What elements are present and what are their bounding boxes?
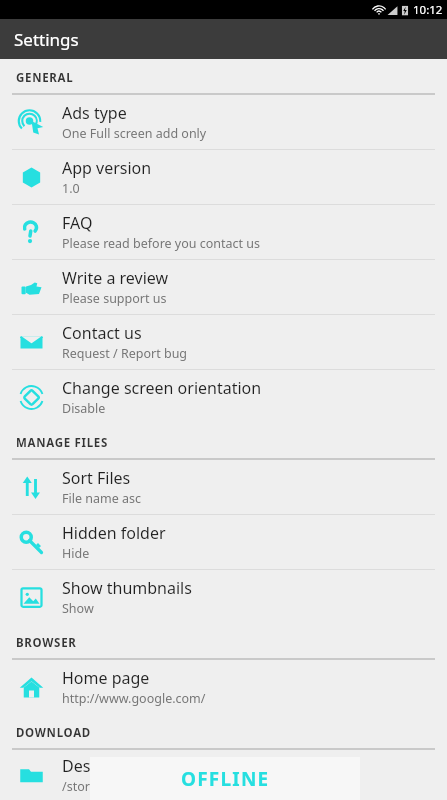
button[interactable]: Home page [0, 660, 447, 714]
button[interactable]: Change screen orientation [0, 370, 447, 424]
staticText: Home page [62, 667, 150, 689]
staticText: OFFLINE [181, 766, 270, 792]
button[interactable]: Contact us [0, 315, 447, 370]
staticText: One Full screen add only [62, 125, 207, 142]
button[interactable]: Write a review [0, 260, 447, 315]
button[interactable]: App version [0, 150, 447, 205]
button[interactable]: Settings [0, 19, 447, 59]
staticText: Settings [14, 28, 79, 51]
staticText: Hide [62, 545, 90, 562]
staticText: Destination folder [62, 755, 198, 777]
staticText: Request / Report bug [62, 345, 188, 362]
staticText: Show [62, 600, 94, 617]
staticText: Ads type [62, 102, 127, 124]
staticText: Sort Files [62, 467, 131, 489]
staticText: Please read before you contact us [62, 235, 261, 252]
staticText: 10:12 [413, 2, 443, 18]
staticText: GENERAL [16, 70, 74, 86]
button[interactable]: Show thumbnails [0, 570, 447, 624]
staticText: App version [62, 157, 152, 179]
staticText: Hidden folder [62, 522, 166, 544]
button[interactable]: Offline status [90, 757, 360, 800]
button[interactable]: Destination folder [0, 750, 447, 800]
staticText: DOWNLOAD [16, 725, 91, 741]
button[interactable]: Ads type [0, 95, 447, 150]
staticText: FAQ [62, 212, 93, 234]
staticText: MANAGE FILES [16, 435, 109, 451]
staticText: Show thumbnails [62, 577, 192, 599]
staticText: File name asc [62, 490, 141, 507]
staticText: Contact us [62, 322, 142, 344]
staticText: http://www.google.com/ [62, 690, 206, 707]
staticText: Please support us [62, 290, 167, 307]
button[interactable]: Sort Files [0, 460, 447, 515]
staticText: /storage/emulated/0/Tube Video Downloade… [62, 778, 329, 795]
staticText: 1.0 [62, 180, 80, 197]
button[interactable]: FAQ [0, 205, 447, 260]
staticText: Write a review [62, 267, 169, 289]
staticText: Disable [62, 400, 106, 417]
button[interactable]: Hidden folder [0, 515, 447, 570]
staticText: Change screen orientation [62, 377, 262, 399]
staticText: BROWSER [16, 635, 77, 651]
